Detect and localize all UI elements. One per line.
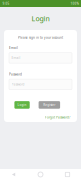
button[interactable]: Forgot Password?	[45, 115, 70, 119]
staticText: Password	[9, 72, 22, 76]
button[interactable]: Home	[27, 169, 54, 180]
button[interactable]: Login	[14, 101, 30, 109]
button[interactable]: Recents	[54, 169, 81, 180]
staticText: Email	[11, 56, 20, 60]
staticText: Login	[18, 103, 27, 107]
staticText: Password	[11, 82, 24, 86]
button[interactable]: Register	[39, 101, 60, 109]
button[interactable]: Back	[0, 169, 27, 180]
staticText: 100%	[70, 1, 78, 5]
staticText: Login	[31, 14, 49, 23]
staticText: Forgot Password?	[45, 115, 70, 119]
staticText: Register	[43, 103, 55, 107]
staticText: Email	[9, 46, 18, 50]
staticText: 9:05	[2, 1, 9, 5]
staticText: Please sign in to your account	[18, 35, 63, 40]
